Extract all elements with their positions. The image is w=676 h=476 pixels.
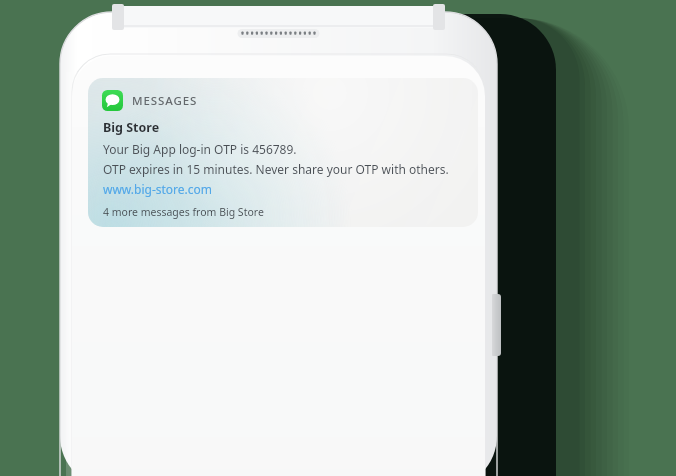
other: Messages app icon — [102, 90, 123, 111]
staticText: OTP expires in 15 minutes. Never share y… — [103, 161, 449, 177]
staticText: Your Big App log-in OTP is 456789. — [103, 141, 297, 157]
button[interactable]: www.big-store.com — [103, 181, 213, 197]
staticText: Big Store — [103, 119, 160, 136]
button[interactable]: Messages app icon — [88, 78, 478, 227]
button[interactable]: Power button — [492, 294, 501, 356]
button[interactable]: 4 more messages from Big Store — [103, 205, 264, 219]
button[interactable]: Messages app icon — [102, 90, 198, 111]
staticText: MESSAGES — [132, 93, 198, 109]
